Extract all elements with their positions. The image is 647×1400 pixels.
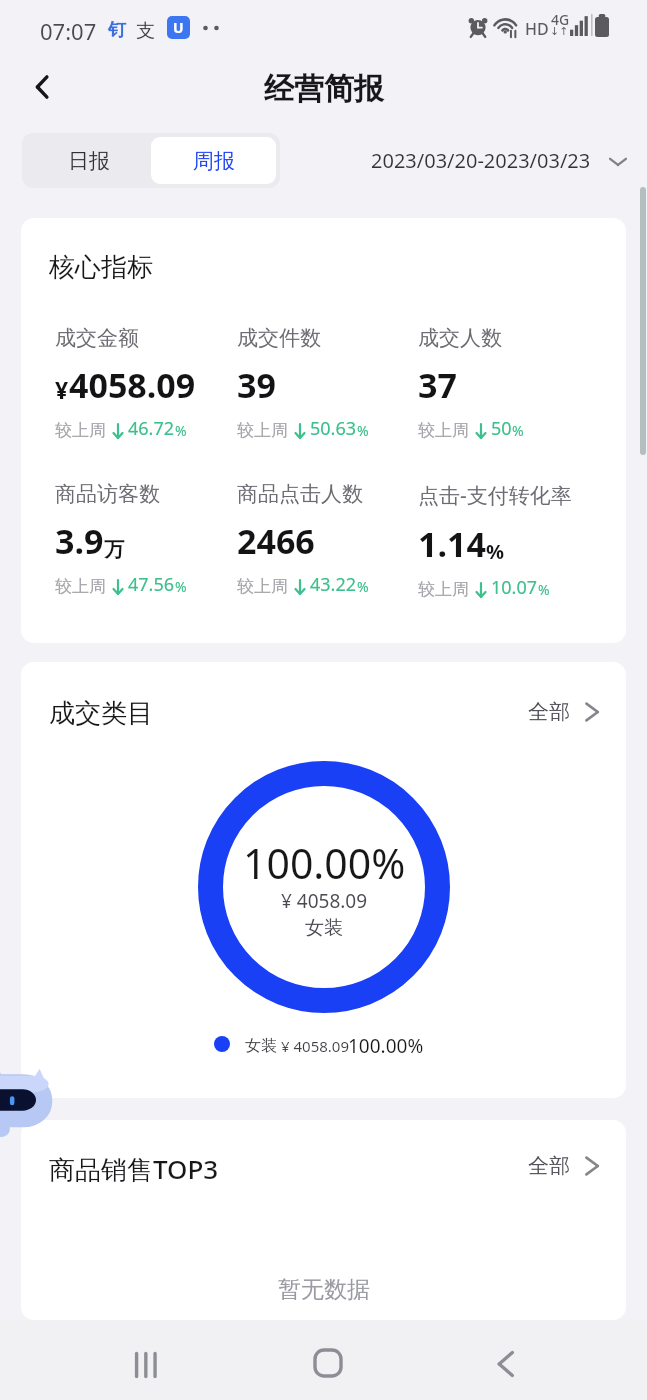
staticText: 100.00% [348,1033,424,1059]
staticText: 女装 [305,916,343,940]
staticText: 经营简报 [264,70,384,108]
staticText: 4G [551,10,570,29]
staticText: 暂无数据 [278,1275,370,1304]
staticText: 46.72 [128,416,175,441]
staticText: % [357,421,369,440]
staticText: % [538,580,550,599]
staticText: 支 [136,19,155,43]
staticText: ¥ 4058.09 [281,888,368,914]
button[interactable]: 日报 [26,137,151,184]
button[interactable]: Back [476,1334,536,1394]
staticText: 钉 [108,19,126,42]
staticText: % [175,577,187,596]
staticText: % [175,421,187,440]
staticText: ¥ [55,374,69,405]
staticText: 较上周 [237,576,288,597]
staticText: 商品访客数 [55,481,160,507]
staticText: 全部 [528,699,570,725]
staticText: 43.22 [310,572,357,597]
staticText: 较上周 [55,420,106,441]
staticText: 1.14 [418,521,486,567]
staticText: ↓↑ [550,25,569,38]
staticText: 2023/03/20-2023/03/23 [371,147,591,174]
staticText: 女装 [245,1036,277,1056]
staticText: 39 [237,362,276,408]
staticText: 100.00% [243,835,406,891]
button[interactable]: Recent apps [117,1335,177,1395]
staticText: 2466 [237,518,315,564]
staticText: 点击-支付转化率 [418,481,572,510]
staticText: 4058.09 [69,362,196,408]
staticText: 万 [104,537,124,562]
staticText: U [173,18,184,37]
staticText: 较上周 [55,576,106,597]
staticText: HD [525,18,549,40]
staticText: 商品销售TOP3 [49,1151,219,1187]
staticText: ¥ 4058.09 [281,1036,349,1056]
staticText: 07:07 [40,16,97,46]
staticText: 3.9 [55,518,104,564]
staticText: 50.63 [310,416,357,441]
staticText: 较上周 [418,579,469,600]
staticText: 核心指标 [49,251,153,284]
staticText: 日报 [68,148,110,174]
staticText: 成交金额 [55,325,139,351]
staticText: 成交类目 [49,697,153,730]
button[interactable]: 周报 [151,137,276,184]
staticText: 成交件数 [237,325,321,351]
button[interactable]: 2023/03/20-2023/03/23 [365,139,635,182]
staticText: 50 [491,416,512,441]
staticText: 47.56 [128,572,175,597]
button[interactable]: 全部 [528,693,604,731]
staticText: 较上周 [418,420,469,441]
staticText: 37 [418,362,457,408]
button[interactable]: Back [16,60,70,114]
staticText: 成交人数 [418,325,502,351]
staticText: % [512,421,524,440]
staticText: 较上周 [237,420,288,441]
staticText: 周报 [193,148,235,174]
staticText: % [357,577,369,596]
staticText: 10.07 [491,575,538,600]
staticText: 全部 [528,1153,570,1179]
staticText: % [486,538,505,565]
button[interactable]: Home [298,1333,358,1393]
staticText: 商品点击人数 [237,481,363,507]
button[interactable]: 全部 [528,1147,604,1185]
